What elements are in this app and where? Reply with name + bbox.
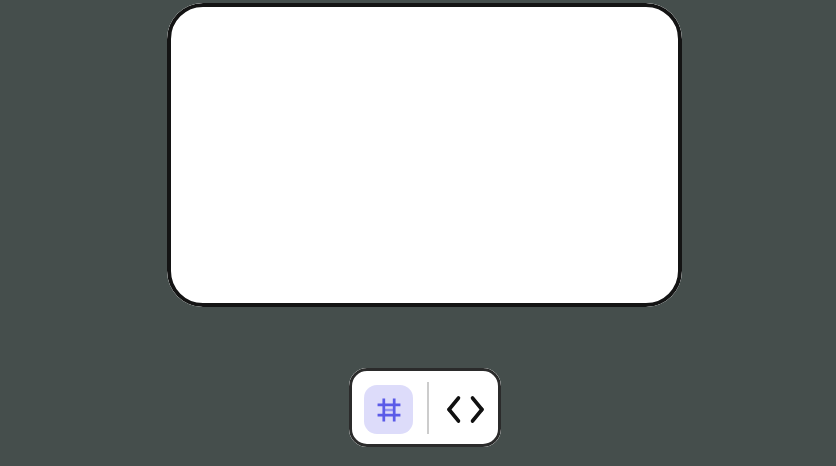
button[interactable] bbox=[167, 3, 682, 307]
button[interactable]: Code view bbox=[439, 385, 491, 434]
button[interactable]: Design view bbox=[364, 385, 413, 434]
